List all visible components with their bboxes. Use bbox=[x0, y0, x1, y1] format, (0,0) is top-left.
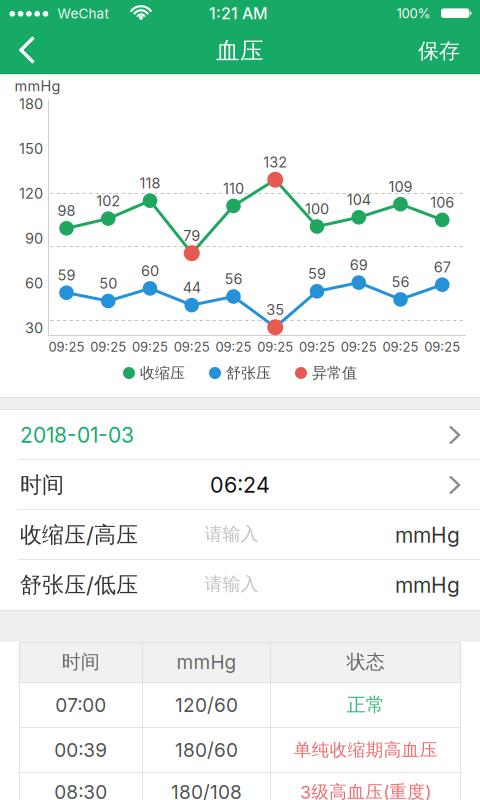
staticText: 07:00 bbox=[55, 693, 106, 716]
staticText: 180 bbox=[19, 95, 43, 113]
staticText: 35 bbox=[266, 301, 284, 318]
staticText: 100 bbox=[305, 200, 329, 218]
staticText: 舒张压/低压 bbox=[20, 571, 138, 599]
staticText: 59 bbox=[308, 265, 326, 282]
staticText: 56 bbox=[224, 270, 242, 288]
staticText: 异常值 bbox=[312, 364, 357, 382]
staticText: 180/60 bbox=[175, 738, 238, 761]
staticText: 104 bbox=[347, 191, 371, 208]
staticText: mmHg bbox=[395, 572, 460, 598]
staticText: 132 bbox=[263, 153, 287, 171]
button[interactable]: 2018-01-03 bbox=[0, 410, 480, 460]
staticText: 120 bbox=[19, 185, 43, 202]
staticText: 150 bbox=[19, 140, 43, 157]
staticText: 状态 bbox=[347, 650, 385, 674]
staticText: 120/60 bbox=[175, 693, 238, 716]
staticText: 118 bbox=[139, 174, 160, 192]
staticText: 09:25 bbox=[48, 339, 84, 355]
staticText: 109 bbox=[388, 178, 412, 195]
staticText: 106 bbox=[430, 194, 454, 211]
staticText: 00:39 bbox=[54, 738, 107, 761]
staticText: 79 bbox=[183, 227, 200, 244]
staticText: 102 bbox=[96, 192, 120, 210]
staticText: 收缩压/高压 bbox=[20, 521, 138, 549]
staticText: 06:24 bbox=[210, 472, 270, 498]
staticText: 1:21 AM bbox=[209, 4, 268, 23]
staticText: 收缩压 bbox=[140, 364, 185, 382]
staticText: 110 bbox=[223, 180, 244, 197]
button[interactable]: 时间 bbox=[0, 460, 480, 510]
staticText: 血压 bbox=[216, 36, 264, 66]
staticText: 时间 bbox=[62, 650, 100, 674]
staticText: 舒张压 bbox=[226, 364, 271, 382]
staticText: 59 bbox=[57, 266, 75, 284]
staticText: 100% bbox=[396, 5, 430, 21]
staticText: 180/108 bbox=[171, 780, 242, 800]
staticText: 单纯收缩期高血压 bbox=[294, 739, 438, 761]
staticText: 60 bbox=[25, 274, 43, 292]
staticText: 98 bbox=[57, 202, 75, 219]
staticText: 50 bbox=[99, 275, 117, 292]
staticText: 正常 bbox=[347, 693, 385, 717]
staticText: 08:30 bbox=[54, 780, 107, 800]
staticText: 2018-01-03 bbox=[20, 422, 134, 448]
staticText: 保存 bbox=[418, 38, 460, 64]
staticText: 56 bbox=[391, 273, 409, 291]
staticText: 请输入 bbox=[204, 523, 258, 545]
button[interactable]: 保存 bbox=[418, 28, 480, 74]
staticText: 44 bbox=[183, 279, 201, 296]
staticText: 90 bbox=[25, 230, 43, 247]
button[interactable]: 舒张压/低压 bbox=[0, 560, 480, 610]
staticText: 09:25 bbox=[424, 339, 460, 355]
staticText: mmHg bbox=[14, 77, 60, 95]
staticText: 67 bbox=[434, 258, 451, 276]
staticText: 09:25 bbox=[132, 339, 168, 355]
staticText: 09:25 bbox=[299, 339, 335, 355]
staticText: mmHg bbox=[395, 522, 460, 548]
button[interactable]: Back bbox=[0, 28, 56, 74]
staticText: 30 bbox=[25, 319, 43, 337]
staticText: WeChat bbox=[57, 5, 108, 22]
staticText: mmHg bbox=[176, 650, 236, 673]
staticText: 09:25 bbox=[341, 339, 377, 355]
staticText: 60 bbox=[141, 262, 159, 280]
staticText: 请输入 bbox=[204, 573, 258, 595]
staticText: 09:25 bbox=[174, 339, 210, 355]
staticText: 69 bbox=[350, 256, 368, 274]
staticText: 09:25 bbox=[90, 339, 126, 355]
staticText: 3级高血压(重度) bbox=[300, 781, 431, 800]
button[interactable]: 收缩压/高压 bbox=[0, 510, 480, 560]
staticText: 09:25 bbox=[215, 339, 251, 355]
staticText: 09:25 bbox=[257, 339, 293, 355]
staticText: 09:25 bbox=[382, 339, 418, 355]
staticText: 时间 bbox=[20, 471, 64, 499]
